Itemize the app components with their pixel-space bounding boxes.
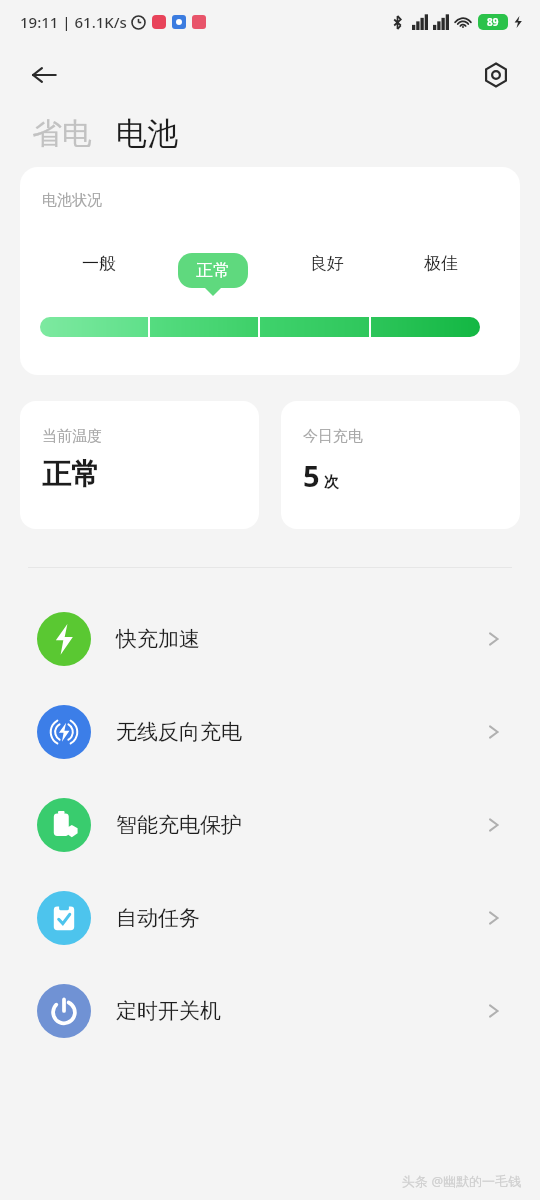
staticText: 定时开关机 xyxy=(116,998,484,1024)
staticText: 快充加速 xyxy=(116,626,484,652)
staticText: 5 xyxy=(303,456,320,495)
staticText: 电池 xyxy=(116,114,178,153)
button[interactable]: 电池 xyxy=(116,114,178,153)
button[interactable]: Settings xyxy=(474,53,518,97)
staticText: 正常 xyxy=(42,456,100,493)
staticText: 今日充电 xyxy=(303,427,363,446)
staticText: 智能充电保护 xyxy=(116,812,484,838)
button[interactable]: 快充加速 xyxy=(0,592,540,685)
staticText: 次 xyxy=(324,473,339,492)
staticText: 当前温度 xyxy=(42,427,102,446)
button[interactable]: 当前温度 xyxy=(20,401,259,529)
staticText: 良好 xyxy=(310,253,344,274)
button[interactable]: Back xyxy=(22,53,66,97)
button[interactable]: 今日充电 xyxy=(281,401,520,529)
staticText: 自动任务 xyxy=(116,905,484,931)
staticText: 无线反向充电 xyxy=(116,719,484,745)
button[interactable]: 省电 xyxy=(32,115,92,153)
staticText: 省电 xyxy=(32,115,92,153)
button[interactable]: 电池状况 xyxy=(20,167,520,375)
staticText: 极佳 xyxy=(424,253,458,274)
staticText: 89 xyxy=(487,15,499,29)
staticText: 19:11 | 61.1K/s xyxy=(20,12,127,32)
staticText: 一般 xyxy=(82,253,116,274)
button[interactable]: 无线反向充电 xyxy=(0,685,540,778)
button[interactable]: 自动任务 xyxy=(0,871,540,964)
staticText: 正常 xyxy=(196,260,230,281)
staticText: 电池状况 xyxy=(42,191,102,210)
button[interactable]: 智能充电保护 xyxy=(0,778,540,871)
staticText: 头条 @幽默的一毛钱 xyxy=(402,1172,522,1190)
button[interactable]: 定时开关机 xyxy=(0,964,540,1057)
